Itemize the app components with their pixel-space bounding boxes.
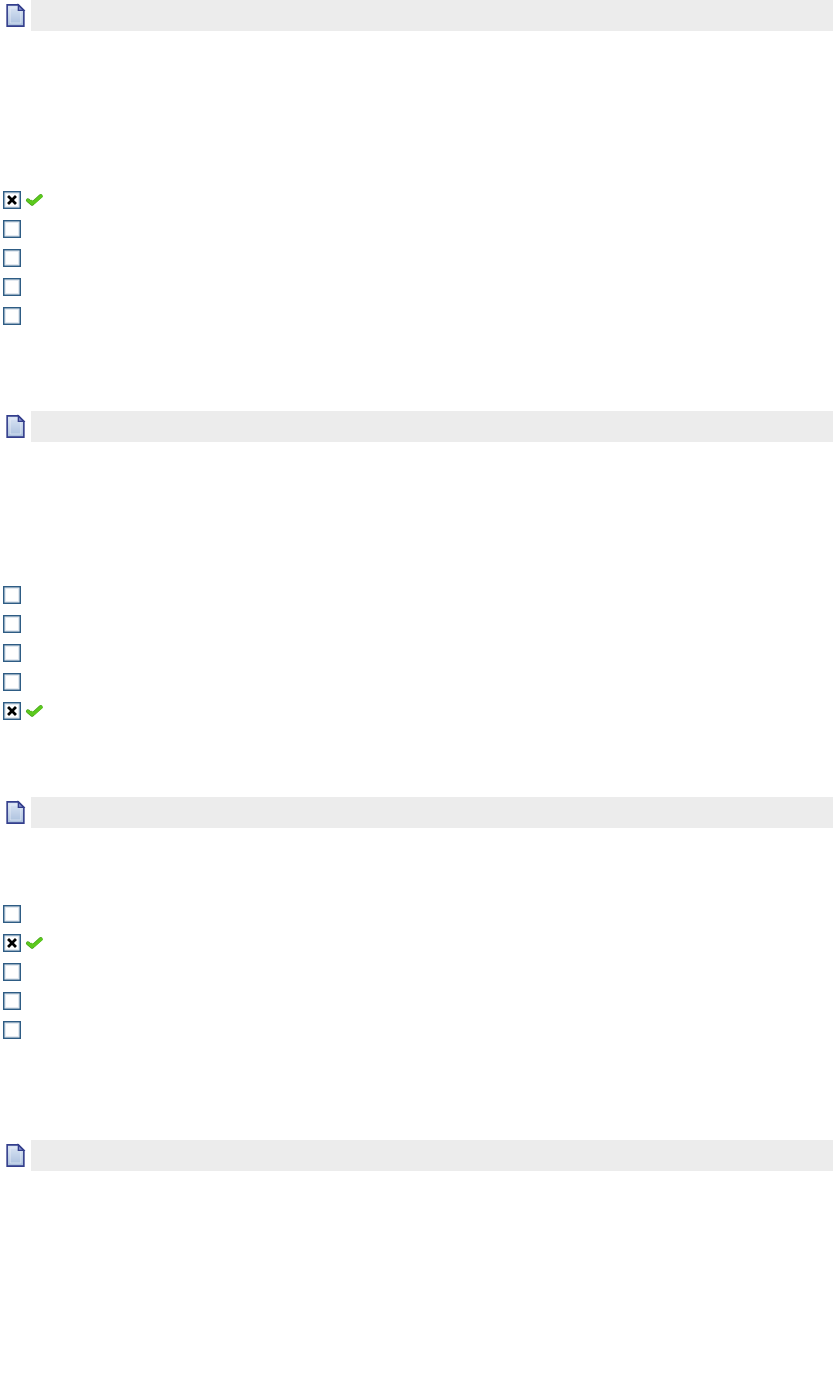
- button[interactable]: Question 2 option 2: [0, 609, 833, 638]
- button[interactable]: Question 3 option 3: [0, 957, 833, 986]
- button[interactable]: Question 1 option 5: [0, 301, 833, 330]
- button[interactable]: Question 1 option 1: [0, 185, 833, 214]
- button[interactable]: Question 2 option 1: [0, 580, 833, 609]
- button[interactable]: Question 2 option 5: [0, 696, 833, 725]
- button[interactable]: Question 2 option 3: [0, 638, 833, 667]
- button[interactable]: Question 4: [0, 1140, 833, 1171]
- button[interactable]: Question 3: [0, 797, 833, 828]
- button[interactable]: Question 1: [0, 0, 833, 31]
- button[interactable]: Question 2: [0, 411, 833, 442]
- button[interactable]: Question 3 option 1: [0, 899, 833, 928]
- button[interactable]: Question 3 option 5: [0, 1015, 833, 1044]
- button[interactable]: Question 2 option 4: [0, 667, 833, 696]
- button[interactable]: Question 1 option 3: [0, 243, 833, 272]
- button[interactable]: Question 1 option 4: [0, 272, 833, 301]
- button[interactable]: Question 3 option 4: [0, 986, 833, 1015]
- button[interactable]: Question 1 option 2: [0, 214, 833, 243]
- button[interactable]: Question 3 option 2: [0, 928, 833, 957]
